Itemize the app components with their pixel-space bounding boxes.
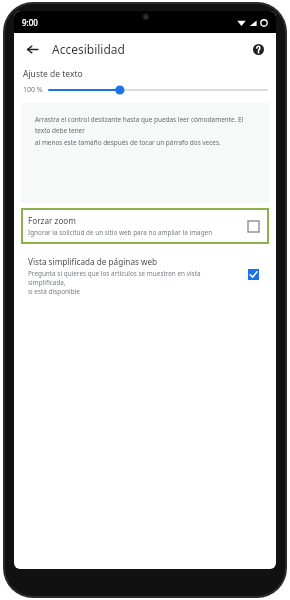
button[interactable]: Forzar zoom [21, 208, 269, 244]
button[interactable]: 100 % [23, 83, 267, 97]
staticText: Ignorar la solicitud de un sitio web par… [28, 228, 213, 237]
staticText: 9:00 [22, 17, 38, 28]
staticText: Forzar zoom [28, 215, 76, 226]
button[interactable]: Forzar zoom checkbox [244, 217, 262, 235]
staticText: Accesibilidad [52, 41, 125, 57]
button[interactable]: Vista simplificada de páginas web [14, 254, 276, 302]
staticText: 100 % [23, 85, 43, 95]
button[interactable]: Help [247, 38, 269, 60]
staticText: Pregunta si quieres que los artículos se… [28, 269, 238, 287]
staticText: Arrastra el control deslizante hasta que… [35, 115, 257, 135]
staticText: si está disponible [28, 287, 80, 296]
staticText: al menos este tamaño después de tocar un… [35, 138, 221, 147]
staticText: Vista simplificada de páginas web [28, 256, 158, 267]
button[interactable]: Vista simplificada checkbox [244, 265, 262, 283]
button[interactable]: Back [20, 37, 44, 61]
staticText: Ajuste de texto [23, 68, 83, 80]
